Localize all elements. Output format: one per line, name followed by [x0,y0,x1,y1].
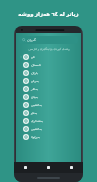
button[interactable]: Recents [60,162,83,173]
staticText: به‌یان [31,95,38,99]
staticText: به‌شداری [31,119,43,123]
staticText: زیاتر له‌ ٦٤ هه‌زار ووشه [18,10,79,17]
button[interactable]: باران [16,69,81,77]
staticText: ئاو [31,55,35,59]
button[interactable]: به‌خشین [16,101,81,109]
staticText: گه‌ڕان [27,38,36,42]
button[interactable]: به‌ڕێوه [16,133,81,141]
button[interactable]: به‌خشین [16,125,81,133]
button[interactable]: به‌شداری [16,117,81,125]
staticText: باران [31,71,38,75]
staticText: به‌ره‌و [31,79,39,83]
button[interactable]: به‌ره‌و [16,77,81,85]
button[interactable]: ئاو [16,53,81,61]
staticText: به‌هار [31,87,38,91]
button[interactable]: به‌یان [16,93,81,101]
button[interactable]: گه‌ڕان [19,36,78,44]
button[interactable]: به‌هار [16,85,81,93]
staticText: به‌ناو [31,111,37,115]
button[interactable]: ئاسمان [16,61,81,69]
staticText: به‌ڕێوه [31,135,40,139]
staticText: به‌خشین [31,127,42,131]
button[interactable]: Home [37,162,60,173]
button[interactable]: Back [14,162,37,173]
staticText: ئاسمان [31,63,41,67]
button[interactable]: به‌ناو [16,109,81,117]
staticText: وشەی کوردی بۆ ئینگلیزی و فارسی [28,47,70,51]
staticText: به‌خشین [31,103,42,107]
